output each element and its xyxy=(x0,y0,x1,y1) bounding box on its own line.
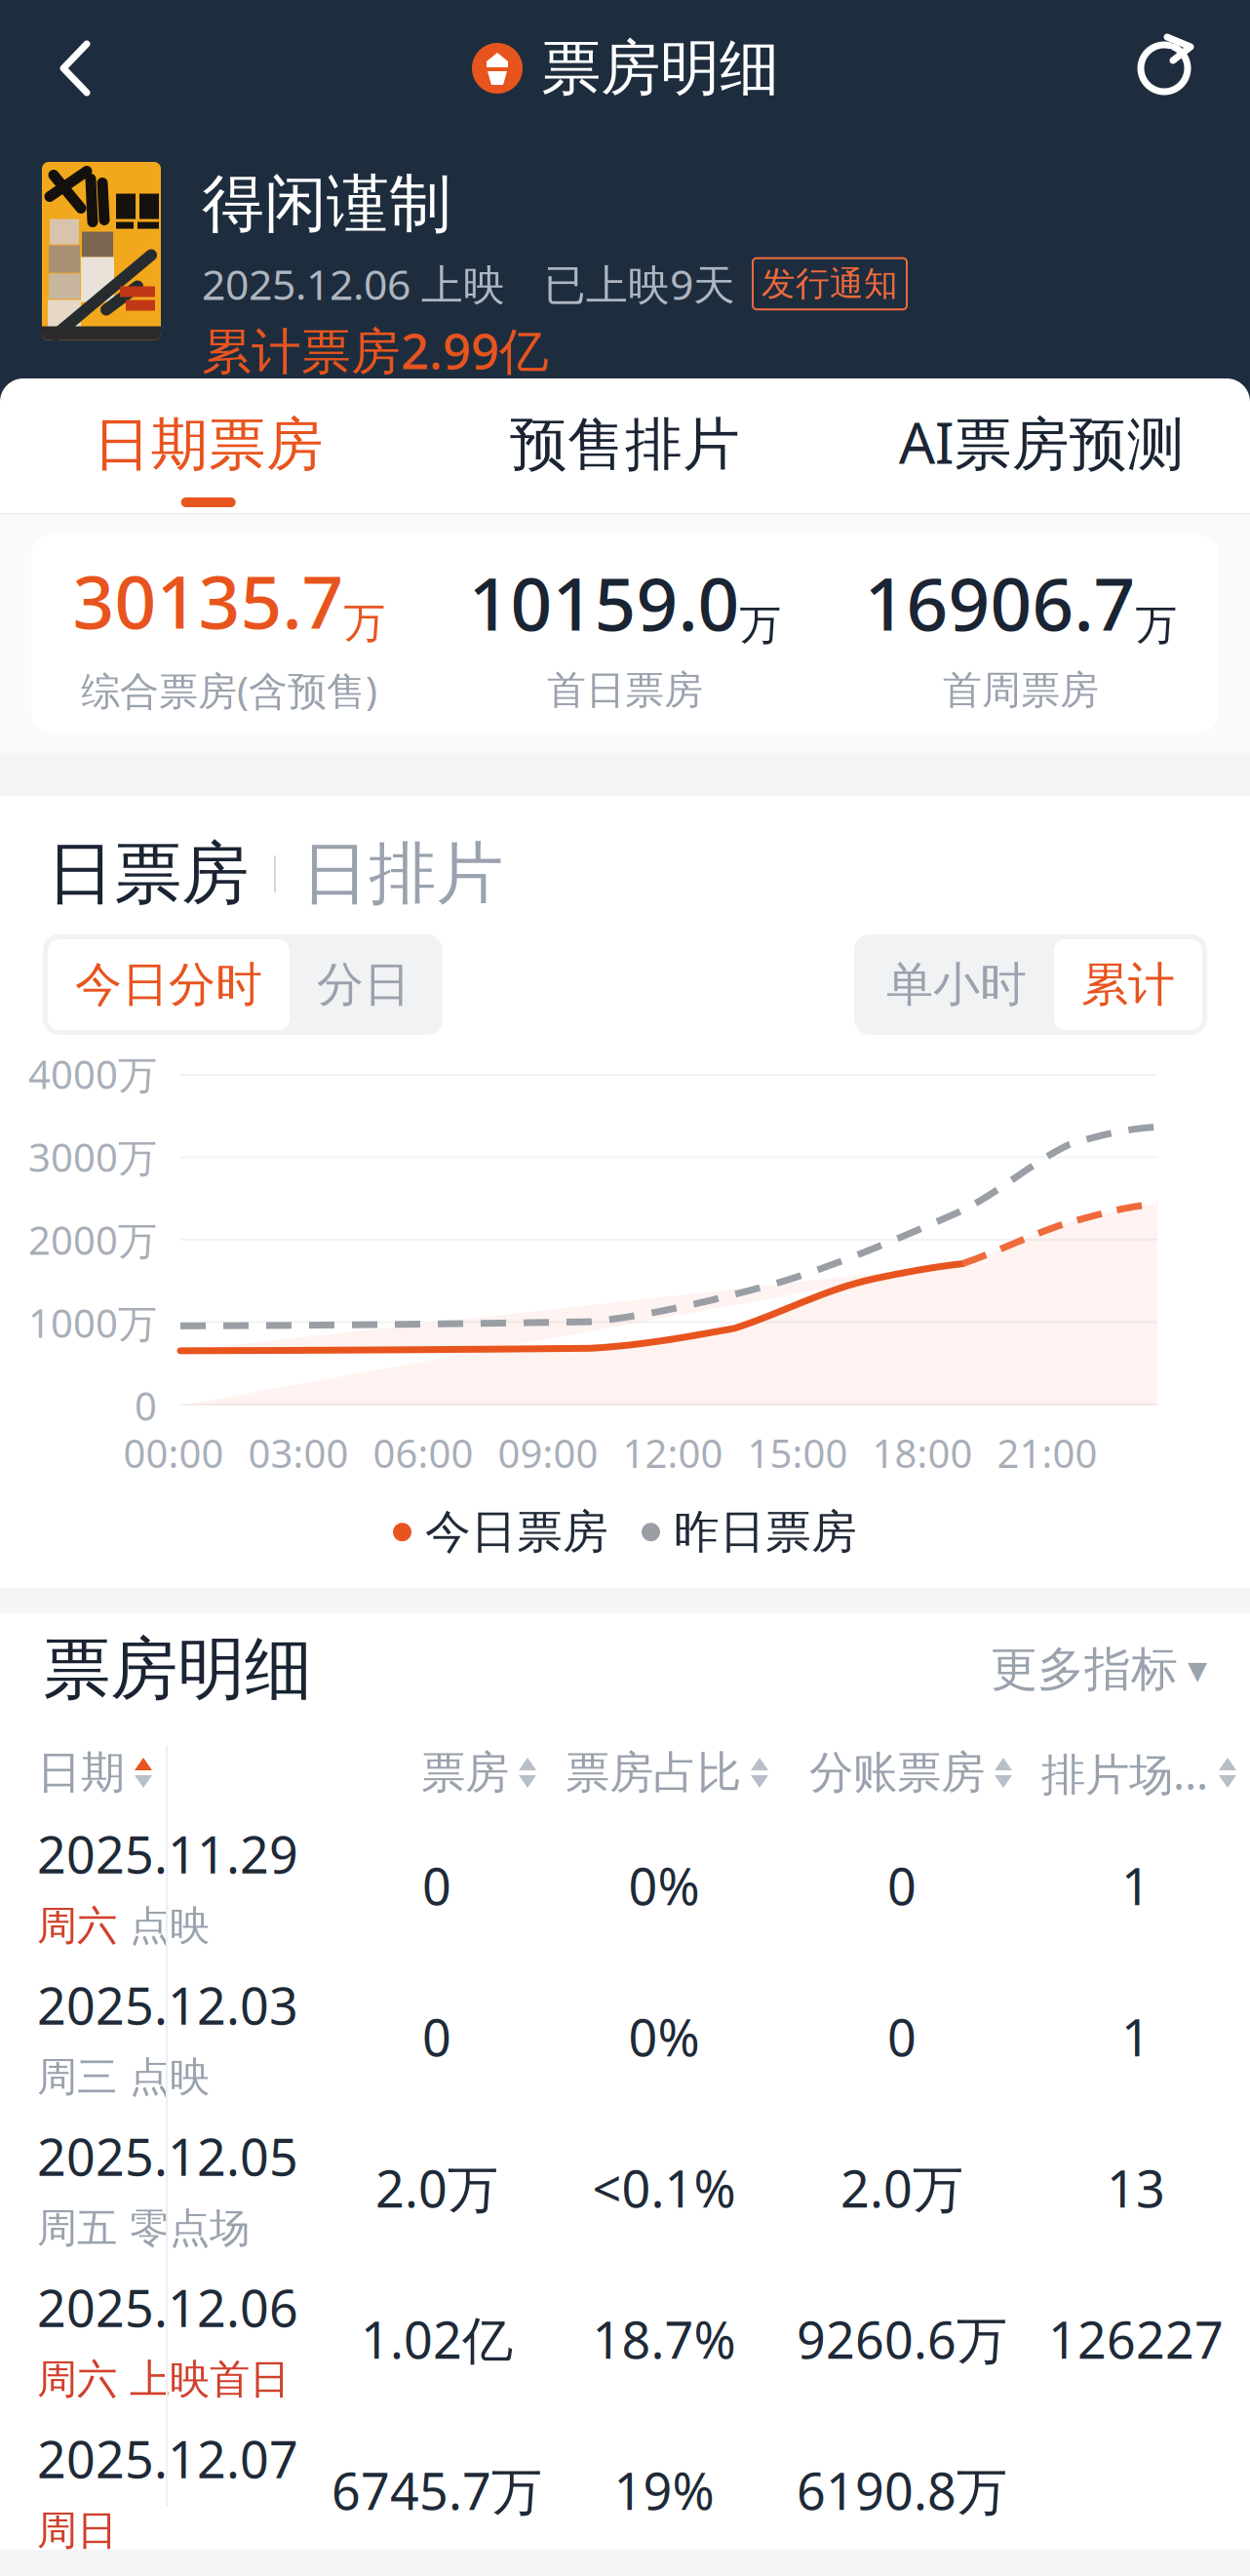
staticText: 预售排片 xyxy=(510,410,740,480)
staticText: 6190.8万 xyxy=(797,2457,1007,2524)
staticText: 2000万 xyxy=(28,1214,157,1266)
staticText: 万 xyxy=(344,598,386,649)
staticText: 日排片 xyxy=(301,832,503,915)
staticText: 万 xyxy=(740,599,781,651)
staticText: 排片场次 xyxy=(1041,1743,1209,1802)
staticText: 2025.12.07 xyxy=(37,2425,298,2492)
button[interactable]: 今日分时 xyxy=(48,939,290,1030)
staticText: 06:00 xyxy=(373,1427,473,1479)
staticText: 10159.0 xyxy=(469,554,740,651)
staticText: 1 xyxy=(1121,1852,1151,1919)
staticText: 今日票房 xyxy=(425,1504,608,1560)
staticText: 首日票房 xyxy=(547,666,703,714)
staticText: 周五 xyxy=(37,2203,117,2253)
staticText: 19% xyxy=(614,2457,714,2524)
button[interactable]: 分账票房 xyxy=(780,1744,1024,1802)
staticText: 首周票房 xyxy=(943,666,1099,714)
button[interactable]: 2025.12.05 xyxy=(0,2112,1250,2263)
button[interactable]: Back xyxy=(55,27,201,109)
button[interactable]: 预售排片 xyxy=(417,378,833,513)
staticText: 万 xyxy=(1135,599,1177,651)
staticText: 单小时 xyxy=(886,956,1027,1013)
staticText: 票房 xyxy=(421,1746,509,1800)
staticText: 4000万 xyxy=(28,1048,157,1100)
staticText: 0 xyxy=(887,1852,917,1919)
staticText: 上映首日 xyxy=(130,2355,290,2404)
staticText: 得闲谨制 xyxy=(202,166,451,242)
staticText: 2025.12.06 上映 xyxy=(202,256,505,311)
button[interactable]: 单小时 xyxy=(859,939,1054,1030)
staticText: 点映 xyxy=(130,2052,210,2102)
button[interactable]: 票房占比 xyxy=(548,1744,780,1802)
staticText: 昨日票房 xyxy=(674,1504,857,1560)
button[interactable]: 日排片 xyxy=(301,832,503,915)
staticText: 13 xyxy=(1107,2154,1165,2222)
staticText: 今日分时 xyxy=(75,956,262,1013)
button[interactable]: AI票房预测 xyxy=(833,378,1250,513)
staticText: 分日 xyxy=(317,956,410,1013)
button[interactable]: 2025.11.29 xyxy=(0,1810,1250,1961)
staticText: 6745.7万 xyxy=(332,2457,542,2524)
button[interactable]: 2025.12.07 xyxy=(0,2415,1250,2566)
staticText: 分账票房 xyxy=(809,1746,985,1800)
button[interactable]: 日期票房 xyxy=(0,378,417,513)
staticText: 2025.12.03 xyxy=(37,1971,298,2039)
staticText: 16906.7 xyxy=(864,554,1135,651)
staticText: 00:00 xyxy=(123,1427,224,1479)
staticText: 周日 xyxy=(37,2506,117,2555)
staticText: 1.02亿 xyxy=(361,2305,513,2373)
staticText: <0.1% xyxy=(592,2154,736,2222)
staticText: 21:00 xyxy=(997,1427,1097,1479)
staticText: 日票房 xyxy=(47,832,249,915)
button[interactable]: Refresh xyxy=(1049,27,1195,109)
staticText: 0 xyxy=(887,2003,917,2070)
staticText: 周三 xyxy=(37,2052,117,2102)
staticText: 周六 xyxy=(37,1901,117,1951)
staticText: 2025.11.29 xyxy=(37,1820,298,1888)
staticText: 15:00 xyxy=(747,1427,848,1479)
staticText: 累计票房2.99亿 xyxy=(202,317,549,383)
staticText: 票房占比 xyxy=(566,1746,741,1800)
staticText: 0% xyxy=(628,1852,700,1919)
staticText: 0 xyxy=(422,2003,451,2070)
staticText: 更多指标 xyxy=(991,1641,1178,1698)
button[interactable]: 累计 xyxy=(1054,939,1202,1030)
staticText: 3000万 xyxy=(28,1131,157,1183)
button[interactable]: 日票房 xyxy=(47,832,249,915)
button[interactable]: 票房 xyxy=(326,1744,548,1802)
staticText: 126227 xyxy=(1048,2305,1224,2373)
staticText: 0% xyxy=(628,2003,700,2070)
button[interactable]: 2025.12.06 xyxy=(0,2263,1250,2415)
staticText: 1 xyxy=(1121,2003,1151,2070)
staticText: 09:00 xyxy=(498,1427,598,1479)
staticText: 2.0万 xyxy=(375,2154,498,2222)
staticText: 03:00 xyxy=(248,1427,349,1479)
staticText: 0 xyxy=(135,1380,157,1431)
staticText: 18:00 xyxy=(872,1427,973,1479)
button[interactable]: 排片场次 xyxy=(1024,1744,1248,1802)
staticText: 综合票房(含预售) xyxy=(81,664,377,716)
staticText: 已上映9天 xyxy=(544,256,735,311)
staticText: 日期 xyxy=(37,1746,125,1800)
staticText: 发行通知 xyxy=(762,263,898,305)
staticText: 零点场 xyxy=(130,2203,250,2253)
staticText: 周六 xyxy=(37,2355,117,2404)
staticText: 12:00 xyxy=(623,1427,723,1479)
staticText: 0 xyxy=(422,1852,451,1919)
button[interactable]: 更多指标 xyxy=(991,1641,1207,1698)
staticText: AI票房预测 xyxy=(899,404,1184,480)
staticText: 票房明细 xyxy=(43,1628,312,1711)
button[interactable]: 分日 xyxy=(290,939,438,1030)
staticText: 2.0万 xyxy=(840,2154,963,2222)
staticText: 累计 xyxy=(1081,956,1175,1013)
staticText: 9260.6万 xyxy=(797,2305,1007,2373)
staticText: 票房明细 xyxy=(541,32,779,105)
staticText: 1000万 xyxy=(28,1297,157,1348)
staticText: 2025.12.05 xyxy=(37,2123,298,2190)
staticText: 点映 xyxy=(130,1901,210,1951)
button[interactable]: 日期 xyxy=(37,1744,326,1802)
staticText: 30135.7 xyxy=(73,552,344,649)
staticText: 18.7% xyxy=(592,2305,736,2373)
button[interactable]: 2025.12.03 xyxy=(0,1961,1250,2112)
staticText: 日期票房 xyxy=(93,410,323,480)
